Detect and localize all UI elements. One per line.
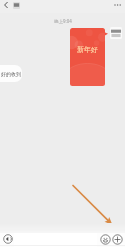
button[interactable]: Sender avatar	[110, 27, 122, 39]
button[interactable]: Message bubble	[0, 65, 22, 82]
staticText: 新年好	[77, 45, 98, 54]
button[interactable]: Red packet	[70, 28, 105, 86]
button[interactable]: Voice input	[3, 234, 13, 244]
button[interactable]: More options	[111, 0, 123, 11]
button[interactable]: Message input	[14, 233, 97, 247]
button[interactable]: Contact avatar	[13, 2, 20, 9]
staticText: 好的收到	[1, 71, 21, 77]
button[interactable]: Emoji	[100, 234, 111, 245]
staticText: 晚上9:04	[54, 18, 72, 24]
button[interactable]: Back	[1, 0, 11, 10]
button[interactable]: More actions	[112, 234, 123, 245]
